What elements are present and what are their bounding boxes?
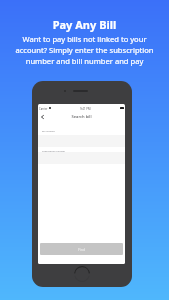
staticText: Bill Number xyxy=(42,130,55,133)
staticText: Subscription Number xyxy=(42,150,66,153)
staticText: Find xyxy=(78,247,86,252)
staticText: Search bill xyxy=(38,114,125,120)
staticText: Want to pay bills not linked to your acc… xyxy=(0,34,169,66)
staticText: Carrier xyxy=(39,107,48,111)
staticText: 9:41 PM xyxy=(80,107,91,111)
button[interactable]: Back xyxy=(38,111,48,122)
staticText: Pay Any Bill xyxy=(0,17,169,32)
